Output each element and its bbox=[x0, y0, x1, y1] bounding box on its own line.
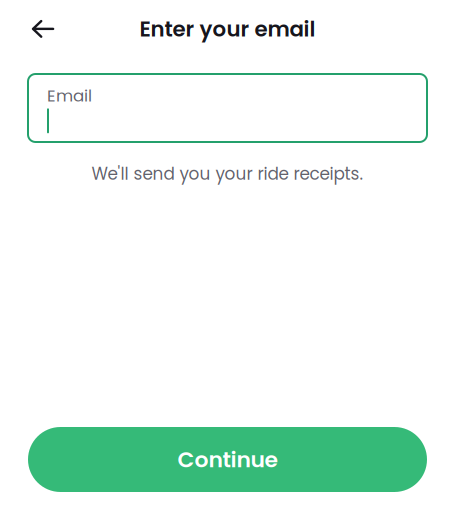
button[interactable]: Email bbox=[28, 74, 427, 142]
staticText: Continue bbox=[177, 444, 277, 475]
staticText: We'll send you your ride receipts. bbox=[91, 162, 363, 186]
staticText: Email bbox=[47, 84, 92, 107]
button[interactable]: Back bbox=[21, 7, 65, 51]
staticText: Enter your email bbox=[139, 14, 315, 44]
button[interactable]: Continue bbox=[28, 427, 427, 492]
